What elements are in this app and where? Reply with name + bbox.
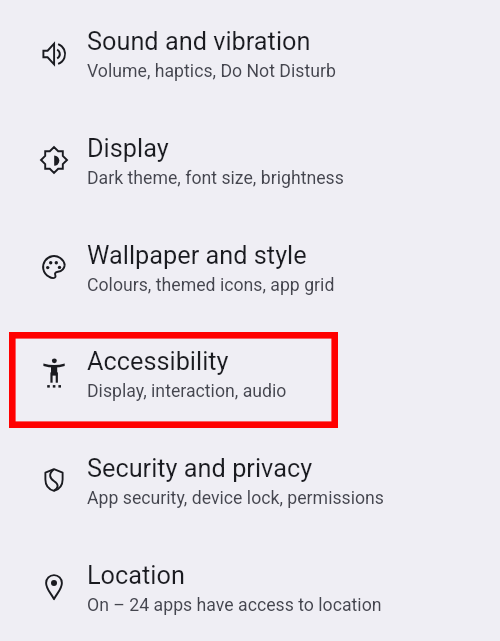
staticText: Dark theme, font size, brightness: [87, 168, 344, 189]
staticText: Display: [87, 134, 169, 164]
other: Wallpaper and style: [36, 249, 72, 285]
staticText: Accessibility: [87, 347, 229, 377]
button[interactable]: Location: [0, 534, 500, 641]
staticText: App security, device lock, permissions: [87, 488, 384, 509]
button[interactable]: Sound and vibration: [0, 0, 500, 107]
staticText: Wallpaper and style: [87, 241, 307, 271]
staticText: Display, interaction, audio: [87, 381, 287, 402]
other: Security and privacy: [36, 462, 72, 498]
button[interactable]: Security and privacy: [0, 427, 500, 534]
button[interactable]: Accessibility: [0, 320, 500, 427]
staticText: Security and privacy: [87, 454, 313, 484]
other: Display: [36, 142, 72, 178]
other: Accessibility: [36, 355, 72, 391]
button[interactable]: Display: [0, 107, 500, 214]
button[interactable]: Wallpaper and style: [0, 214, 500, 321]
staticText: Volume, haptics, Do Not Disturb: [87, 61, 336, 82]
other: Location: [36, 569, 72, 605]
staticText: Location: [87, 561, 185, 591]
staticText: On – 24 apps have access to location: [87, 595, 382, 616]
staticText: Sound and vibration: [87, 27, 311, 57]
other: Sound and vibration: [37, 36, 73, 72]
staticText: Colours, themed icons, app grid: [87, 275, 335, 296]
